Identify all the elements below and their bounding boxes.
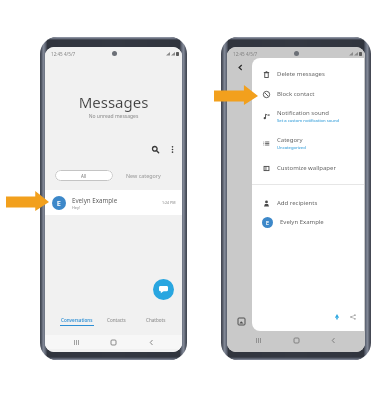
button[interactable]: Recents <box>252 334 265 347</box>
staticText: Chatbots <box>146 317 166 323</box>
button[interactable]: All <box>55 170 113 181</box>
button[interactable]: Attach image <box>236 316 247 327</box>
staticText: Set a custom notification sound <box>277 118 340 124</box>
staticText: No unread messages <box>45 113 182 120</box>
button[interactable]: More options <box>165 142 179 156</box>
staticText: E <box>57 199 61 208</box>
staticText: Messages <box>45 92 182 112</box>
button[interactable]: Customize wallpaper <box>262 161 364 175</box>
button[interactable]: E <box>52 190 176 215</box>
staticText: 12:45 4/5/7 <box>51 51 76 57</box>
button[interactable]: Recents <box>70 336 83 349</box>
button[interactable]: Back <box>145 336 158 349</box>
staticText: Delete messages <box>277 70 325 78</box>
button[interactable]: Share <box>347 311 358 322</box>
button[interactable]: Chatbots <box>136 317 175 323</box>
button[interactable]: Conversations <box>57 317 97 326</box>
staticText: Conversations <box>61 317 93 323</box>
staticText: Block contact <box>277 90 315 98</box>
staticText: Contacts <box>107 317 126 323</box>
staticText: All <box>81 173 87 179</box>
staticText: Evelyn Example <box>280 218 324 226</box>
staticText: New category <box>126 172 161 179</box>
button[interactable]: E <box>262 215 364 229</box>
staticText: Notification sound <box>277 109 329 117</box>
button[interactable]: Back <box>234 61 246 73</box>
staticText: Customize wallpaper <box>277 164 336 172</box>
button[interactable]: New conversation <box>153 279 174 300</box>
staticText: 12:45 4/5/7 <box>233 51 258 57</box>
staticText: E <box>266 219 269 226</box>
staticText: 1:24 PM <box>162 200 176 205</box>
staticText: Evelyn Example <box>72 196 118 204</box>
button[interactable]: Category <box>262 134 364 152</box>
staticText: Category <box>277 136 303 144</box>
button[interactable]: Search <box>148 142 162 156</box>
button[interactable]: Add recipients <box>262 196 364 210</box>
button[interactable]: Block contact <box>262 87 364 101</box>
button[interactable]: Notification sound <box>262 107 364 125</box>
staticText: Uncategorized <box>277 145 306 151</box>
button[interactable]: New category <box>126 170 161 181</box>
button[interactable]: Notifications <box>331 311 342 322</box>
staticText: Add recipients <box>277 199 318 207</box>
button[interactable]: Delete messages <box>262 67 364 81</box>
button[interactable]: Back <box>327 334 340 347</box>
button[interactable]: Home <box>290 334 303 347</box>
staticText: Hey! <box>72 205 80 210</box>
button[interactable]: Contacts <box>97 317 136 323</box>
button[interactable]: Home <box>107 336 120 349</box>
